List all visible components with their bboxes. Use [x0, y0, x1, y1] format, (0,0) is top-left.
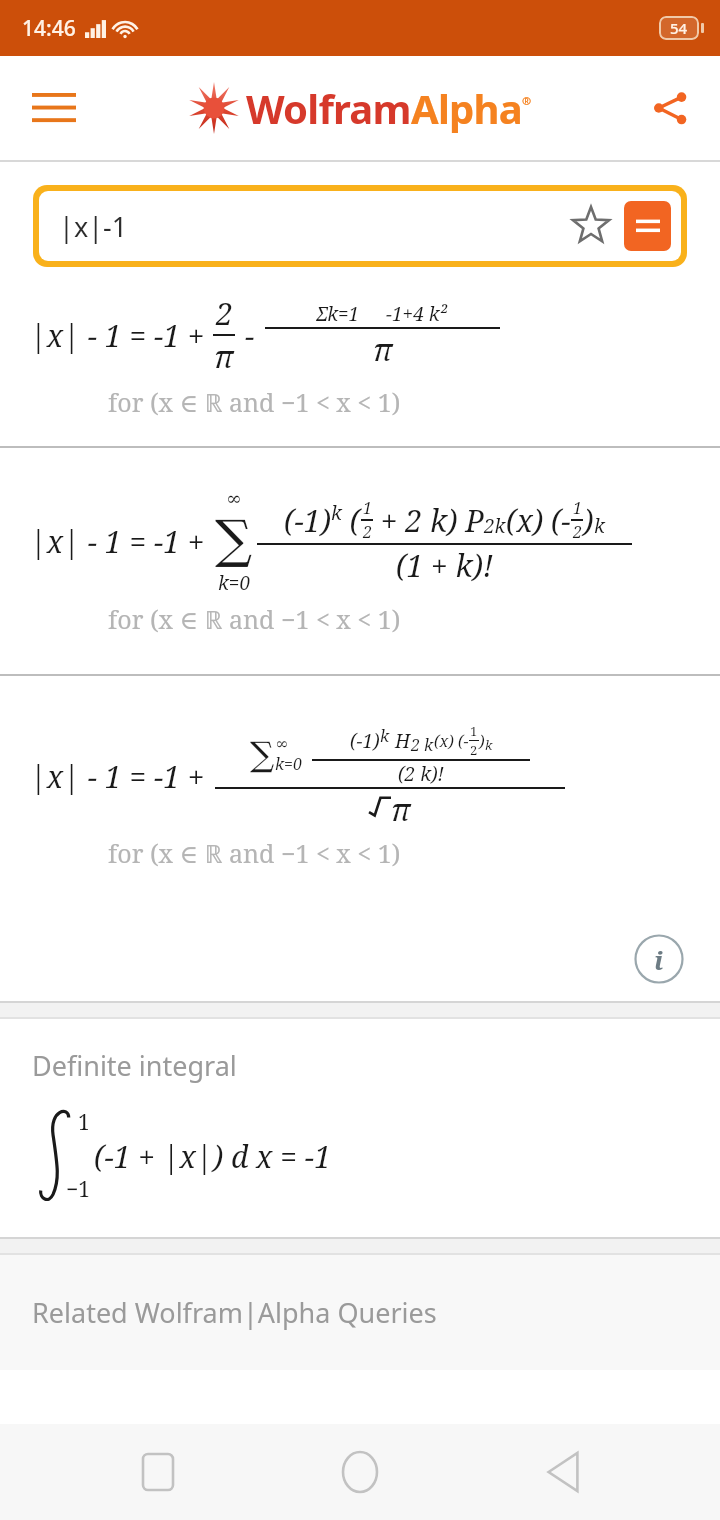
staticText: 2 k	[411, 734, 434, 756]
staticText: k=0	[218, 570, 251, 596]
staticText: (−1)	[350, 728, 380, 754]
staticText: π	[391, 789, 411, 830]
staticText: 1	[363, 497, 372, 519]
button[interactable]: Back	[518, 1427, 608, 1517]
staticText: 1	[470, 722, 478, 740]
staticText: −1+4 k²	[386, 301, 448, 327]
staticText: 2	[216, 293, 233, 334]
staticText: −1	[66, 1175, 90, 1204]
button[interactable]: |x|-1	[39, 191, 681, 261]
staticText: (x) (−	[434, 730, 469, 752]
staticText: k	[485, 736, 493, 754]
button[interactable]: Compute	[624, 201, 671, 251]
staticText: Σk=1	[317, 301, 360, 327]
staticText: )	[479, 730, 485, 752]
staticText: (	[342, 500, 361, 541]
button[interactable]: Related Wolfram|Alpha Queries	[0, 1255, 720, 1370]
staticText: 2	[470, 741, 478, 759]
staticText: 54	[670, 18, 688, 38]
staticText: 2	[363, 521, 372, 543]
button[interactable]: Share	[638, 76, 702, 140]
button[interactable]: |x| − 1 = −1 +	[0, 448, 720, 674]
staticText: π	[214, 336, 234, 377]
staticText: k	[594, 513, 605, 539]
button[interactable]: Recents	[113, 1427, 203, 1517]
staticText: + 2 k) P	[373, 500, 484, 541]
staticText: 2k	[484, 513, 506, 539]
staticText: |x|-1	[59, 208, 128, 245]
staticText: k=0	[275, 753, 302, 775]
staticText: ∑	[215, 509, 253, 570]
staticText: )	[583, 500, 594, 541]
staticText: 1	[78, 1108, 90, 1137]
staticText: (2 k)!	[398, 761, 444, 787]
staticText: for (x ∈ ℝ and −1 < x < 1)	[108, 602, 401, 636]
button[interactable]: |x| − 1 = −1 +	[0, 289, 720, 446]
staticText: ®	[522, 93, 532, 108]
staticText: (−1)	[284, 500, 331, 541]
staticText: i	[654, 942, 664, 977]
staticText: Definite integral	[32, 1047, 237, 1084]
staticText: H	[390, 728, 411, 754]
staticText: −	[245, 315, 255, 356]
staticText: |x| − 1 = −1 +	[30, 756, 205, 797]
staticText: Wolfram	[246, 81, 411, 135]
staticText: 1	[573, 497, 582, 519]
staticText: k	[380, 725, 390, 747]
button[interactable]: Favorite	[564, 199, 618, 253]
button[interactable]: Definite integral	[0, 1019, 720, 1237]
staticText: 2	[573, 521, 582, 543]
staticText: ∞	[226, 487, 242, 509]
button[interactable]: Menu	[20, 74, 88, 142]
staticText: (−1 + |x|) d x = −1	[94, 1136, 331, 1177]
staticText: k	[331, 500, 342, 526]
staticText: |x| − 1 = −1 +	[30, 315, 205, 356]
button[interactable]: |x| − 1 = −1 +	[0, 676, 720, 916]
staticText: for (x ∈ ℝ and −1 < x < 1)	[108, 385, 401, 419]
staticText: ∑	[250, 734, 275, 774]
staticText: |x| − 1 = −1 +	[30, 521, 205, 562]
staticText: π	[373, 329, 393, 370]
staticText: ∞	[275, 734, 289, 753]
staticText: (1 + k)!	[396, 545, 493, 586]
staticText: Related Wolfram|Alpha Queries	[32, 1294, 437, 1331]
staticText: (x) (−	[506, 500, 571, 541]
staticText: Alpha	[411, 81, 522, 135]
button[interactable]: Information	[630, 930, 688, 988]
staticText: for (x ∈ ℝ and −1 < x < 1)	[108, 836, 401, 870]
button[interactable]: Home	[315, 1427, 405, 1517]
staticText: 14:46	[22, 14, 76, 43]
